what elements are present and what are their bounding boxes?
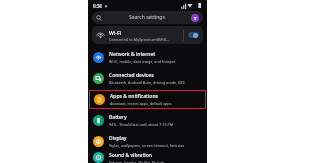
staticText: Wi-Fi, mobile, data usage, and hotspot xyxy=(109,59,176,64)
staticText: Assistant, recent apps, default apps xyxy=(110,101,172,106)
staticText: Styles, wallpapers, screen timeout, font… xyxy=(109,143,185,148)
staticText: Bluetooth, Android Auto, driving mode, N… xyxy=(109,80,186,85)
staticText: Connected devices xyxy=(109,72,154,79)
staticText: Network & internet xyxy=(109,51,156,58)
button[interactable]: Network & internet xyxy=(88,47,207,68)
staticText: Battery xyxy=(109,114,127,121)
button[interactable]: Battery xyxy=(88,110,207,131)
button[interactable]: Wi-Fi xyxy=(92,26,203,44)
staticText: T xyxy=(194,16,197,21)
staticText: Wi-Fi xyxy=(109,29,122,36)
button[interactable]: Sound & vibration xyxy=(88,152,207,163)
staticText: Connected to MySpectrumWiFi0... xyxy=(109,37,170,42)
button[interactable]: Connected devices xyxy=(88,68,207,89)
button[interactable]: Apps & notifications xyxy=(90,91,205,108)
staticText: Sound & vibration xyxy=(109,152,152,159)
button[interactable]: Toggle Wi-Fi xyxy=(188,32,199,38)
staticText: Display xyxy=(109,135,127,142)
staticText: Volume, haptics, Do Not Disturb xyxy=(109,160,165,163)
staticText: Apps & notifications xyxy=(110,93,158,100)
button[interactable]: Search settings xyxy=(92,11,203,24)
staticText: Search settings xyxy=(129,14,165,21)
button[interactable]: Display xyxy=(88,131,207,152)
staticText: 9:38 xyxy=(93,3,102,9)
button[interactable]: Account xyxy=(191,14,199,22)
staticText: 94% - Should last until about 7:15 PM xyxy=(109,122,174,127)
